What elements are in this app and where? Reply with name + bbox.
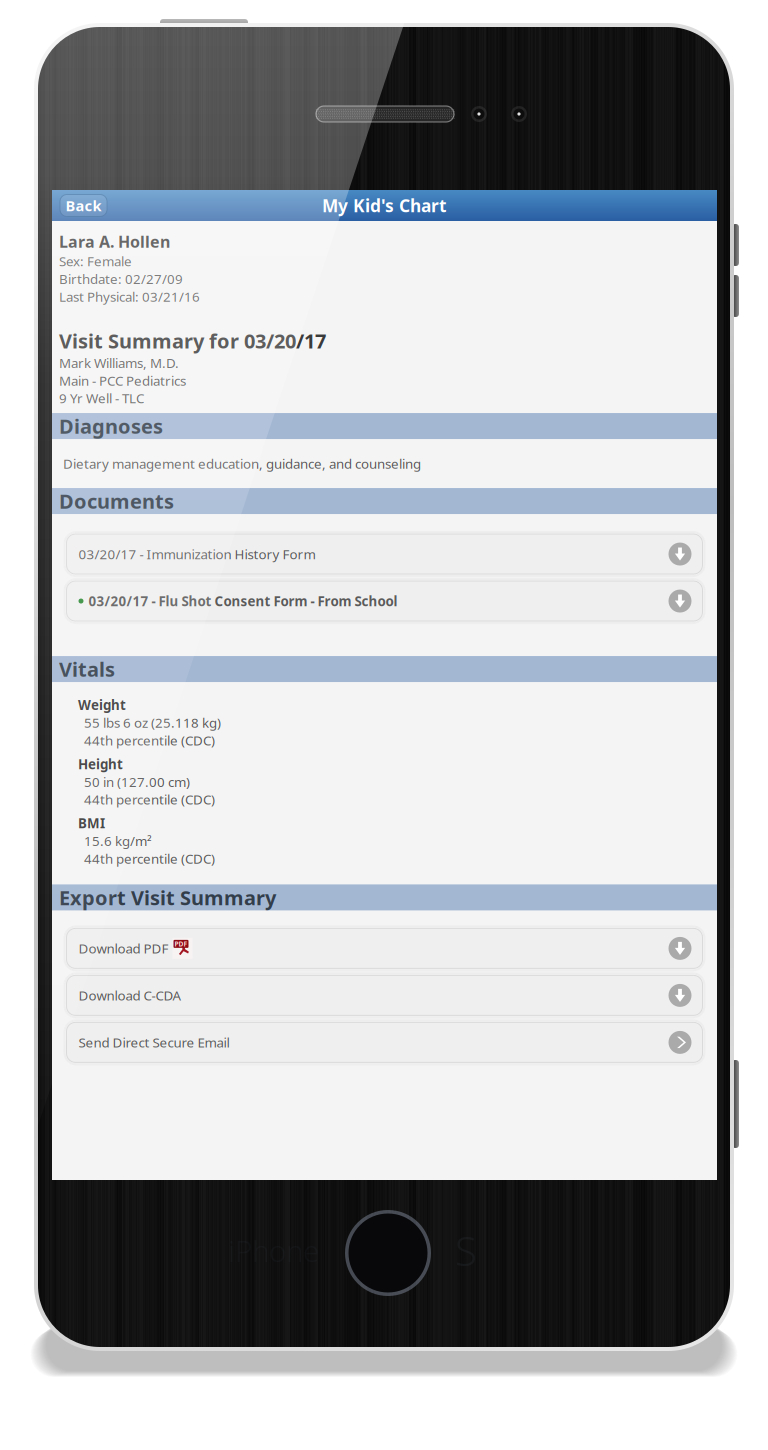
button[interactable]: Send Direct Secure Email bbox=[66, 1022, 702, 1062]
staticText: Back bbox=[65, 196, 101, 215]
staticText: BMI bbox=[78, 814, 105, 832]
staticText: PDF bbox=[174, 939, 187, 948]
staticText: Documents bbox=[59, 488, 174, 514]
staticText: Visit Summary for 03/20/17 bbox=[59, 327, 326, 354]
staticText: Download PDF bbox=[78, 939, 168, 957]
staticText: 44th percentile (CDC) bbox=[84, 850, 215, 867]
staticText: 44th percentile (CDC) bbox=[84, 731, 215, 749]
button[interactable]: Download PDF bbox=[66, 928, 702, 968]
staticText: Birthdate: 02/27/09 bbox=[59, 270, 183, 288]
staticText: S bbox=[455, 1224, 477, 1277]
staticText: Last Physical: 03/21/16 bbox=[59, 288, 200, 305]
staticText: 03/20/17 - Flu Shot Consent Form - From … bbox=[88, 592, 397, 610]
staticText: Mark Williams, M.D. bbox=[59, 354, 179, 372]
staticText: 50 in (127.00 cm) bbox=[84, 773, 190, 791]
staticText: Export Visit Summary bbox=[59, 884, 276, 911]
staticText: Height bbox=[78, 755, 123, 773]
staticText: Lara A. Hollen bbox=[59, 231, 170, 252]
staticText: 03/20/17 - Immunization History Form bbox=[78, 545, 315, 563]
staticText: 55 lbs 6 oz (25.118 kg) bbox=[84, 714, 221, 731]
staticText: 44th percentile (CDC) bbox=[84, 791, 215, 808]
button[interactable]: 03/20/17 - Immunization History Form bbox=[66, 534, 702, 574]
button[interactable]: Back bbox=[60, 194, 107, 216]
staticText: Weight bbox=[78, 696, 126, 714]
staticText: Send Direct Secure Email bbox=[78, 1033, 229, 1051]
button[interactable]: Download C-CDA bbox=[66, 975, 702, 1015]
staticText: My Kid's Chart bbox=[322, 194, 447, 217]
staticText: Diagnoses bbox=[59, 413, 163, 439]
staticText: Download C-CDA bbox=[78, 986, 181, 1004]
staticText: 15.6 kg/m² bbox=[84, 832, 152, 850]
staticText: Vitals bbox=[59, 656, 115, 682]
button[interactable]: 03/20/17 - Flu Shot Consent Form - From … bbox=[66, 581, 702, 621]
staticText: Sex: Female bbox=[59, 252, 132, 270]
staticText: 9 Yr Well - TLC bbox=[59, 389, 144, 407]
staticText: Main - PCC Pediatrics bbox=[59, 372, 186, 389]
staticText: Dietary management education, guidance, … bbox=[63, 455, 421, 472]
staticText: iPhone bbox=[228, 1231, 319, 1270]
